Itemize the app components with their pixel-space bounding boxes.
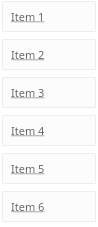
button[interactable]: Item 3 [2, 77, 96, 108]
button[interactable]: Item 5 [2, 153, 96, 184]
staticText: Item 5 [11, 161, 45, 176]
button[interactable]: Item 2 [2, 39, 96, 70]
button[interactable]: Item 4 [2, 115, 96, 146]
staticText: Item 4 [11, 123, 45, 138]
staticText: Item 2 [11, 47, 45, 62]
staticText: Item 1 [11, 9, 45, 24]
staticText: Item 6 [11, 199, 45, 214]
button[interactable]: Item 1 [2, 1, 96, 32]
staticText: Item 3 [11, 85, 45, 100]
button[interactable]: Item 6 [2, 191, 96, 222]
